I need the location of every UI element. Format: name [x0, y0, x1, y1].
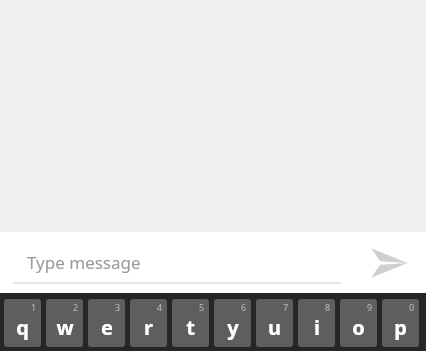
button[interactable]: 5 [172, 299, 209, 347]
staticText: t [186, 314, 195, 341]
button[interactable]: 0 [382, 299, 419, 347]
button[interactable]: 7 [256, 299, 293, 347]
button[interactable]: Send [356, 241, 420, 285]
staticText: 0 [409, 301, 415, 313]
staticText: 8 [325, 301, 331, 313]
button[interactable]: Type message [13, 232, 341, 293]
staticText: i [314, 314, 320, 341]
button[interactable]: 2 [46, 299, 83, 347]
button[interactable]: 4 [130, 299, 167, 347]
staticText: w [56, 314, 74, 341]
staticText: 9 [367, 301, 373, 313]
button[interactable]: 6 [214, 299, 251, 347]
staticText: 2 [73, 301, 79, 313]
staticText: 4 [157, 301, 163, 313]
staticText: Type message [27, 251, 141, 274]
button[interactable]: 3 [88, 299, 125, 347]
staticText: y [227, 314, 239, 341]
staticText: 7 [283, 301, 289, 313]
staticText: r [144, 314, 153, 341]
button[interactable]: 1 [4, 299, 41, 347]
staticText: 5 [199, 301, 205, 313]
button[interactable]: 8 [298, 299, 335, 347]
staticText: e [101, 314, 113, 341]
staticText: 1 [31, 301, 37, 313]
staticText: q [16, 314, 29, 341]
staticText: p [394, 314, 407, 341]
button[interactable]: 9 [340, 299, 377, 347]
staticText: 6 [241, 301, 247, 313]
staticText: 3 [115, 301, 121, 313]
staticText: u [268, 314, 281, 341]
staticText: o [352, 314, 365, 341]
